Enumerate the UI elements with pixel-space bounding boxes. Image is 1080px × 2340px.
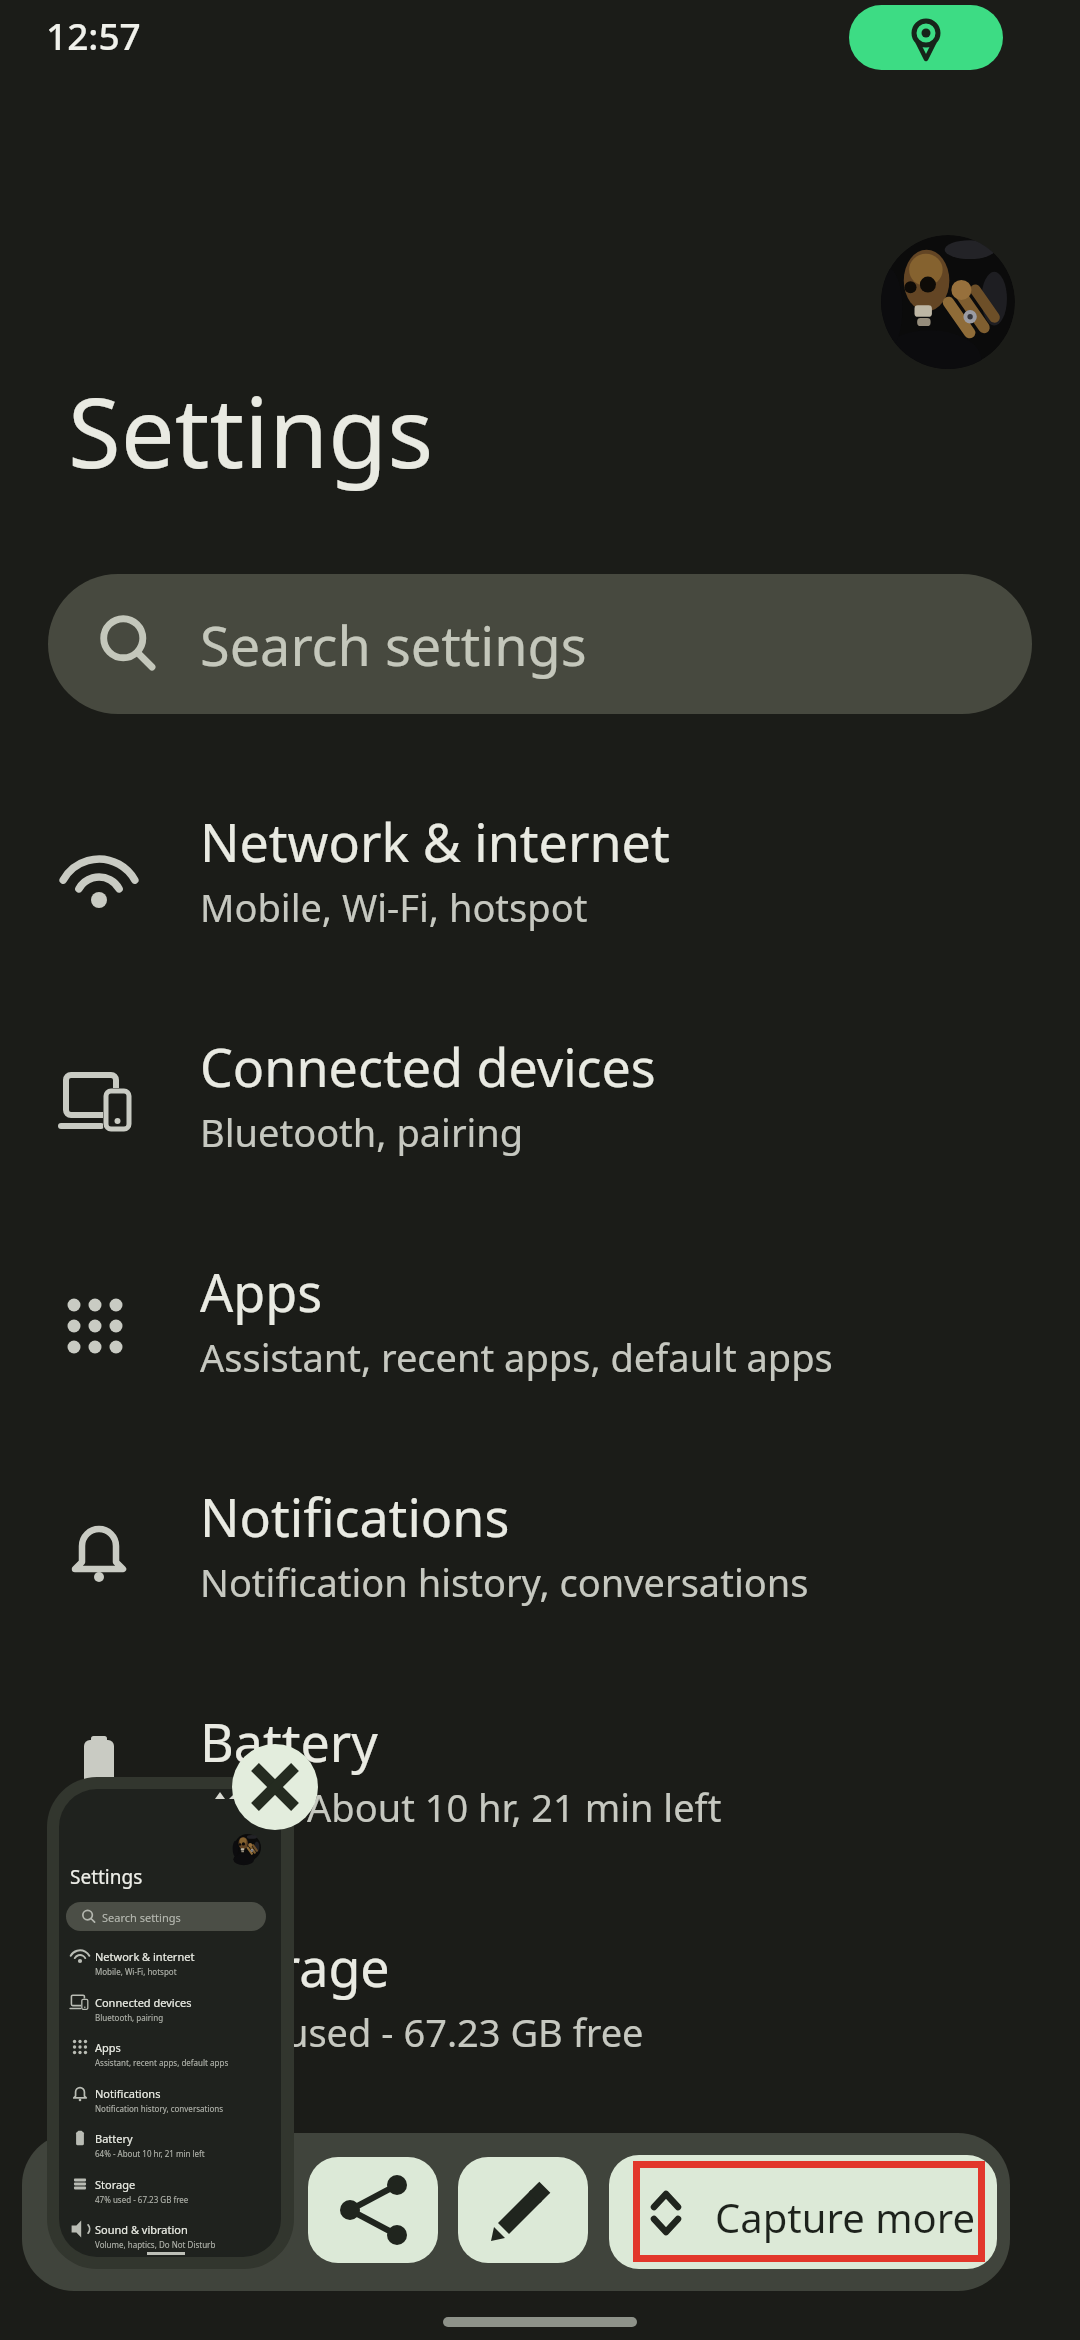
staticText: Connected devices — [95, 1995, 192, 2010]
staticText: 12:57 — [46, 10, 141, 60]
staticText: 64% - About 10 hr, 21 min left — [95, 2148, 205, 2159]
staticText: Notification history, conversations — [95, 2103, 224, 2114]
staticText: 64% - About 10 hr, 21 min left — [200, 1781, 722, 1833]
button[interactable] — [308, 2157, 438, 2263]
button[interactable]: Capture more — [609, 2155, 997, 2269]
button[interactable]: Storage — [0, 1889, 1080, 2114]
button[interactable]: Battery — [0, 1664, 1080, 1889]
button[interactable]: Search settings — [48, 574, 1032, 714]
staticText: 47% used - 67.23 GB free — [200, 2006, 644, 2058]
button[interactable]: Settings — [59, 1789, 281, 2257]
staticText: Assistant, recent apps, default apps — [200, 1331, 833, 1383]
staticText: Storage — [95, 2177, 136, 2192]
staticText: Network & internet — [95, 1949, 195, 1964]
staticText: Notifications — [200, 1481, 510, 1552]
staticText: Volume, haptics, Do Not Disturb — [95, 2239, 216, 2250]
staticText: Battery — [200, 1706, 378, 1777]
staticText: 47% used - 67.23 GB free — [95, 2194, 189, 2205]
button[interactable] — [232, 1744, 318, 1830]
staticText: Bluetooth, pairing — [200, 1106, 524, 1158]
button[interactable] — [849, 5, 1003, 70]
staticText: Apps — [200, 1256, 323, 1327]
staticText: Mobile, Wi-Fi, hotspot — [200, 881, 588, 933]
staticText: Network & internet — [200, 806, 670, 877]
staticText: Bluetooth, pairing — [95, 2012, 164, 2023]
button[interactable]: Connected devices — [0, 989, 1080, 1214]
staticText: Search settings — [200, 608, 587, 682]
button[interactable]: Apps — [0, 1214, 1080, 1439]
staticText: Capture more — [715, 2190, 976, 2244]
button[interactable] — [881, 235, 1015, 369]
staticText: Settings — [68, 365, 434, 496]
button[interactable]: Network & internet — [0, 764, 1080, 989]
staticText: Notifications — [95, 2086, 161, 2101]
staticText: Assistant, recent apps, default apps — [95, 2057, 229, 2068]
staticText: Notification history, conversations — [200, 1556, 809, 1608]
staticText: Settings — [70, 1864, 143, 1890]
staticText: Connected devices — [200, 1031, 656, 1102]
staticText: Mobile, Wi-Fi, hotspot — [95, 1966, 177, 1977]
staticText: Sound & vibration — [95, 2222, 188, 2237]
staticText: Apps — [95, 2040, 121, 2055]
staticText: Storage — [200, 1931, 390, 2002]
button[interactable] — [458, 2157, 588, 2263]
button[interactable]: Notifications — [0, 1439, 1080, 1664]
staticText: Battery — [95, 2131, 133, 2146]
staticText: Search settings — [102, 1910, 181, 1925]
